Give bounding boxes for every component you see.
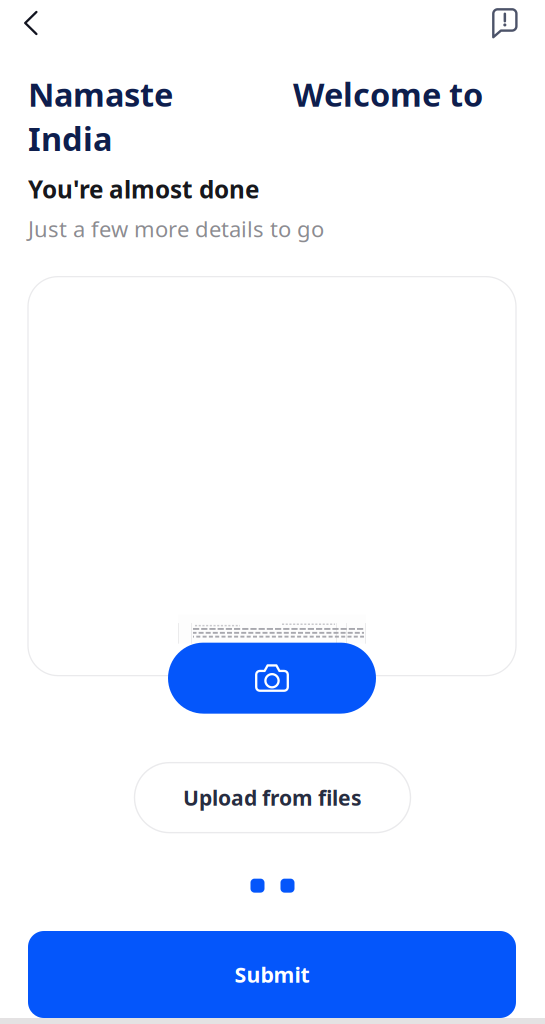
button[interactable]: Submit [28,931,516,1018]
staticText: You're almost done [28,173,259,206]
button[interactable]: Help [474,0,545,46]
staticText: Just a few more details to go [28,214,324,244]
button[interactable]: Upload from files [134,763,410,833]
button[interactable]: Take photo [168,643,376,714]
staticText: Namaste [28,72,173,116]
staticText: India [28,116,112,161]
staticText: Submit [234,960,309,989]
staticText: Upload from files [183,783,362,812]
button[interactable]: Back [0,1,56,45]
staticText: Welcome to [293,72,483,116]
